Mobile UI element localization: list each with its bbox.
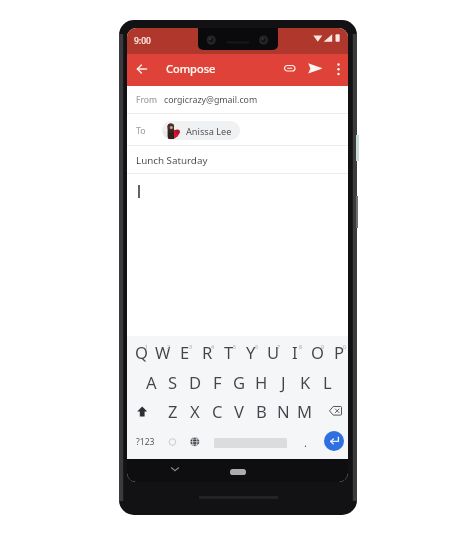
- staticText: 4: [211, 343, 214, 350]
- staticText: F: [213, 371, 222, 394]
- button[interactable]: V: [228, 398, 250, 424]
- button[interactable]: Back: [130, 57, 154, 81]
- staticText: D: [189, 371, 202, 394]
- staticText: corgicrazy@gmail.com: [164, 94, 258, 106]
- button[interactable]: D: [184, 369, 206, 395]
- staticText: T: [224, 341, 234, 364]
- staticText: .: [304, 435, 307, 450]
- staticText: 8: [299, 343, 302, 350]
- button[interactable]: X: [184, 398, 206, 424]
- staticText: 5: [233, 343, 236, 350]
- button[interactable]: Enter: [324, 431, 344, 451]
- button[interactable]: [127, 174, 348, 336]
- staticText: B: [256, 400, 267, 423]
- button[interactable]: Send: [303, 56, 327, 80]
- staticText: O: [311, 341, 324, 364]
- button[interactable]: Q: [130, 339, 152, 365]
- staticText: I: [292, 341, 298, 364]
- button[interactable]: H: [250, 369, 272, 395]
- staticText: V: [234, 400, 244, 423]
- staticText: 9: [321, 343, 324, 350]
- staticText: ?123: [136, 436, 155, 448]
- staticText: M: [297, 400, 313, 423]
- button[interactable]: Home: [230, 469, 246, 475]
- staticText: A: [146, 371, 157, 394]
- staticText: 2: [167, 343, 170, 350]
- staticText: U: [267, 341, 280, 364]
- button[interactable]: S: [162, 369, 184, 395]
- button[interactable]: W: [152, 339, 174, 365]
- button[interactable]: P: [328, 339, 348, 365]
- button[interactable]: Change language: [184, 430, 206, 454]
- staticText: G: [233, 371, 246, 394]
- staticText: N: [277, 400, 290, 423]
- button[interactable]: U: [262, 339, 284, 365]
- button[interactable]: More options: [330, 57, 347, 81]
- staticText: Y: [246, 341, 256, 364]
- button[interactable]: Attach: [279, 56, 301, 80]
- staticText: P: [334, 341, 345, 364]
- button[interactable]: Hide keyboard: [167, 461, 183, 477]
- staticText: S: [168, 371, 178, 394]
- button[interactable]: K: [294, 369, 316, 395]
- button[interactable]: Backspace: [324, 398, 346, 424]
- staticText: Lunch Saturday: [136, 154, 208, 167]
- button[interactable]: G: [228, 369, 250, 395]
- button[interactable]: Shift: [131, 398, 153, 424]
- staticText: J: [281, 371, 286, 394]
- button[interactable]: Lunch Saturday: [127, 146, 348, 174]
- staticText: H: [255, 371, 268, 394]
- button[interactable]: N: [272, 398, 294, 424]
- button[interactable]: I: [284, 339, 306, 365]
- button[interactable]: F: [206, 369, 228, 395]
- staticText: 0: [343, 343, 346, 350]
- button[interactable]: E: [174, 339, 196, 365]
- staticText: To: [136, 125, 146, 137]
- button[interactable]: Z: [162, 398, 184, 424]
- button[interactable]: Emoji: [161, 430, 183, 454]
- staticText: E: [180, 341, 190, 364]
- button[interactable]: Anissa Lee: [162, 121, 240, 140]
- staticText: 3: [189, 343, 192, 350]
- staticText: Q: [135, 341, 148, 364]
- staticText: 6: [255, 343, 258, 350]
- staticText: R: [202, 341, 213, 364]
- button[interactable]: B: [250, 398, 272, 424]
- button[interactable]: A: [140, 369, 162, 395]
- staticText: 7: [277, 343, 280, 350]
- button[interactable]: M: [294, 398, 316, 424]
- button[interactable]: ?123: [131, 430, 160, 454]
- staticText: W: [155, 341, 171, 364]
- staticText: Z: [168, 400, 178, 423]
- staticText: K: [300, 371, 311, 394]
- staticText: From: [136, 94, 158, 106]
- button[interactable]: .: [296, 430, 314, 454]
- staticText: Anissa Lee: [186, 125, 232, 138]
- staticText: L: [323, 371, 332, 394]
- staticText: X: [190, 400, 200, 423]
- button[interactable]: Y: [240, 339, 262, 365]
- button[interactable]: L: [316, 369, 338, 395]
- button[interactable]: O: [306, 339, 328, 365]
- button[interactable]: R: [196, 339, 218, 365]
- button[interactable]: J: [272, 369, 294, 395]
- button[interactable]: To: [127, 114, 348, 146]
- staticText: Compose: [166, 61, 216, 76]
- button[interactable]: From: [127, 86, 348, 114]
- staticText: 9:00: [134, 35, 151, 47]
- staticText: 1: [145, 343, 148, 350]
- staticText: C: [212, 400, 223, 423]
- button[interactable]: T: [218, 339, 240, 365]
- button[interactable]: C: [206, 398, 228, 424]
